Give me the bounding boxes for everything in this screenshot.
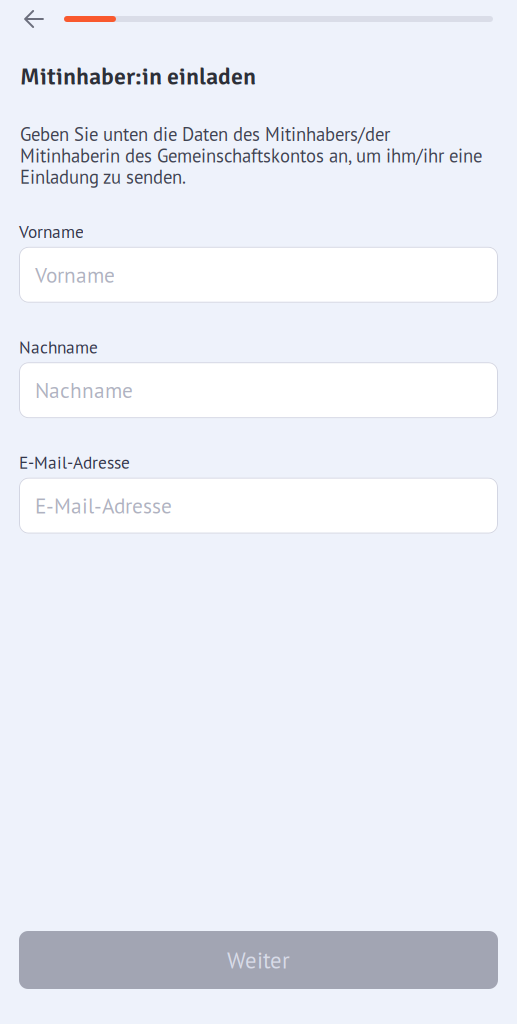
- staticText: Weiter: [227, 945, 290, 975]
- staticText: E-Mail-Adresse: [35, 492, 172, 519]
- button[interactable]: Back: [19, 4, 49, 34]
- staticText: E-Mail-Adresse: [19, 451, 130, 474]
- staticText: Geben Sie unten die Daten des Mitinhaber…: [20, 124, 482, 187]
- button[interactable]: E-Mail-Adresse: [19, 474, 498, 534]
- button[interactable]: Vorname: [19, 243, 498, 303]
- button[interactable]: Weiter: [19, 931, 498, 989]
- staticText: Nachname: [35, 376, 133, 404]
- staticText: Mitinhaber:in einladen: [20, 62, 256, 92]
- staticText: Vorname: [35, 261, 115, 289]
- button[interactable]: Nachname: [19, 358, 498, 418]
- staticText: Vorname: [19, 220, 84, 243]
- staticText: Nachname: [19, 336, 98, 358]
